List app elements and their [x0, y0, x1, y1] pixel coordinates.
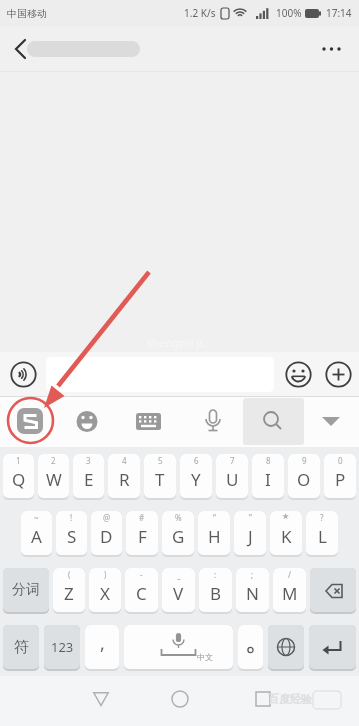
staticText: % — [175, 512, 182, 523]
staticText: T — [155, 468, 165, 491]
button[interactable] — [6, 34, 36, 64]
staticText: ; — [251, 569, 254, 580]
staticText: H — [208, 525, 221, 548]
button[interactable]: 7 — [216, 454, 248, 500]
staticText: V — [173, 582, 184, 605]
staticText: A — [31, 525, 42, 548]
staticText: 5 — [158, 455, 163, 466]
staticText: Y — [191, 468, 201, 491]
staticText: S — [67, 525, 77, 548]
button[interactable] — [0, 396, 71, 447]
staticText: U — [226, 468, 239, 491]
staticText: ” — [249, 512, 252, 523]
button[interactable]: - — [125, 568, 158, 614]
button[interactable]: ★ — [270, 511, 302, 557]
button[interactable]: 符 — [3, 625, 39, 671]
staticText: 7 — [230, 455, 235, 466]
button[interactable]: ; — [236, 568, 269, 614]
staticText: # — [139, 512, 145, 523]
staticText: K — [281, 525, 292, 548]
button[interactable]: 3 — [73, 454, 104, 500]
staticText: R — [119, 468, 130, 491]
staticText: 中国移动 — [7, 7, 47, 20]
button[interactable]: 0 — [324, 454, 356, 500]
button[interactable]: ! — [56, 511, 87, 557]
staticText: @ — [103, 512, 111, 523]
staticText: - — [140, 569, 143, 580]
staticText: X — [100, 582, 110, 605]
staticText: D — [100, 525, 113, 548]
button[interactable]: 分词 — [3, 568, 49, 614]
button[interactable] — [309, 625, 356, 671]
button[interactable]: “ — [198, 511, 230, 557]
button[interactable]: ~ — [21, 511, 52, 557]
staticText: _ — [177, 569, 181, 580]
staticText: E — [84, 468, 94, 491]
staticText: G — [172, 525, 185, 548]
button[interactable] — [243, 398, 304, 445]
button[interactable] — [143, 396, 215, 447]
button[interactable]: 9 — [288, 454, 320, 500]
staticText: Q — [12, 468, 26, 491]
staticText: : — [214, 569, 217, 580]
staticText: 2 — [51, 455, 56, 466]
button[interactable]: 1 — [3, 454, 34, 500]
staticText: , — [100, 631, 105, 656]
button[interactable]: _ — [162, 568, 195, 614]
button[interactable]: 8 — [252, 454, 284, 500]
button[interactable]: % — [162, 511, 194, 557]
staticText: F — [138, 525, 147, 548]
button[interactable]: @ — [91, 511, 122, 557]
staticText: 4 — [122, 455, 127, 466]
staticText: O — [297, 468, 311, 491]
button[interactable]: 2 — [38, 454, 69, 500]
button[interactable] — [325, 361, 352, 388]
staticText: 100% — [276, 6, 302, 20]
staticText: 9 — [302, 455, 307, 466]
button[interactable] — [165, 684, 195, 714]
staticText: ( — [68, 569, 71, 580]
button[interactable]: , — [85, 625, 119, 671]
button[interactable] — [215, 396, 287, 447]
staticText: 中文 — [197, 652, 213, 662]
button[interactable]: ) — [89, 568, 121, 614]
button[interactable] — [10, 361, 37, 388]
staticText: L — [318, 525, 327, 548]
button[interactable]: 中文 — [124, 625, 233, 671]
staticText: ) — [104, 569, 107, 580]
staticText: 8 — [266, 455, 271, 466]
button[interactable]: 6 — [180, 454, 212, 500]
staticText: B — [210, 582, 222, 605]
staticText: 17:14 — [326, 6, 352, 20]
staticText: 符 — [14, 638, 29, 657]
button[interactable] — [238, 625, 263, 671]
staticText: ? — [320, 512, 324, 523]
staticText: 0 — [338, 455, 343, 466]
staticText: / — [288, 569, 291, 580]
button[interactable] — [248, 684, 278, 714]
button[interactable] — [46, 357, 274, 392]
button[interactable] — [287, 396, 359, 447]
button[interactable]: / — [273, 568, 306, 614]
button[interactable]: 123 — [44, 625, 80, 671]
button[interactable] — [310, 568, 356, 614]
button[interactable]: 5 — [144, 454, 176, 500]
staticText: P — [335, 468, 346, 491]
button[interactable]: # — [126, 511, 158, 557]
staticText: 百度经验 — [268, 692, 312, 706]
button[interactable]: : — [199, 568, 232, 614]
button[interactable] — [71, 396, 143, 447]
button[interactable] — [86, 684, 116, 714]
button[interactable] — [319, 35, 347, 63]
staticText: Z — [64, 582, 74, 605]
button[interactable]: 4 — [108, 454, 140, 500]
button[interactable]: ? — [306, 511, 338, 557]
staticText: I — [265, 468, 271, 491]
staticText: N — [246, 582, 259, 605]
button[interactable] — [268, 625, 304, 671]
button[interactable]: ( — [53, 568, 85, 614]
staticText: M — [282, 582, 298, 605]
button[interactable] — [285, 361, 312, 388]
button[interactable]: ” — [234, 511, 266, 557]
